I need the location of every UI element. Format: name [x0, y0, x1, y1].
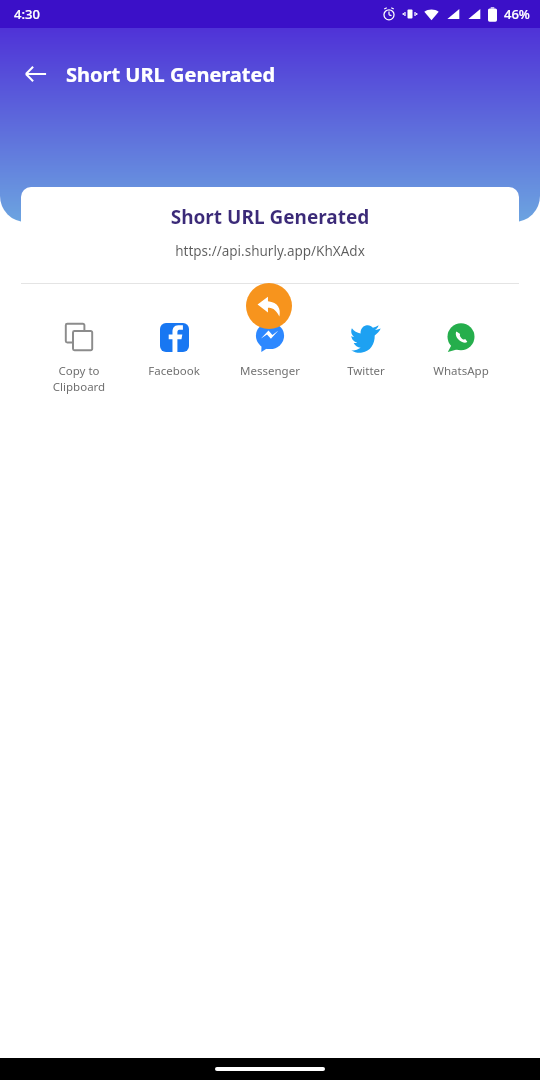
- staticText: https://api.shurly.app/KhXAdx: [21, 242, 519, 260]
- button[interactable]: Facebook: [128, 318, 220, 381]
- button[interactable]: Twitter: [320, 318, 412, 381]
- staticText: Messenger: [224, 363, 316, 379]
- staticText: 4:30: [14, 5, 40, 23]
- button[interactable]: WhatsApp: [415, 318, 507, 381]
- button[interactable]: Messenger: [224, 318, 316, 381]
- button[interactable]: Share: [246, 283, 292, 329]
- staticText: 46%: [504, 5, 530, 23]
- staticText: Facebook: [128, 363, 220, 379]
- staticText: Copy to Clipboard: [33, 363, 125, 394]
- button[interactable]: Copy to Clipboard: [33, 318, 125, 396]
- button[interactable]: Back: [14, 52, 58, 96]
- staticText: Short URL Generated: [21, 204, 519, 230]
- staticText: Short URL Generated: [66, 61, 276, 88]
- staticText: Twitter: [320, 363, 412, 379]
- staticText: WhatsApp: [415, 363, 507, 379]
